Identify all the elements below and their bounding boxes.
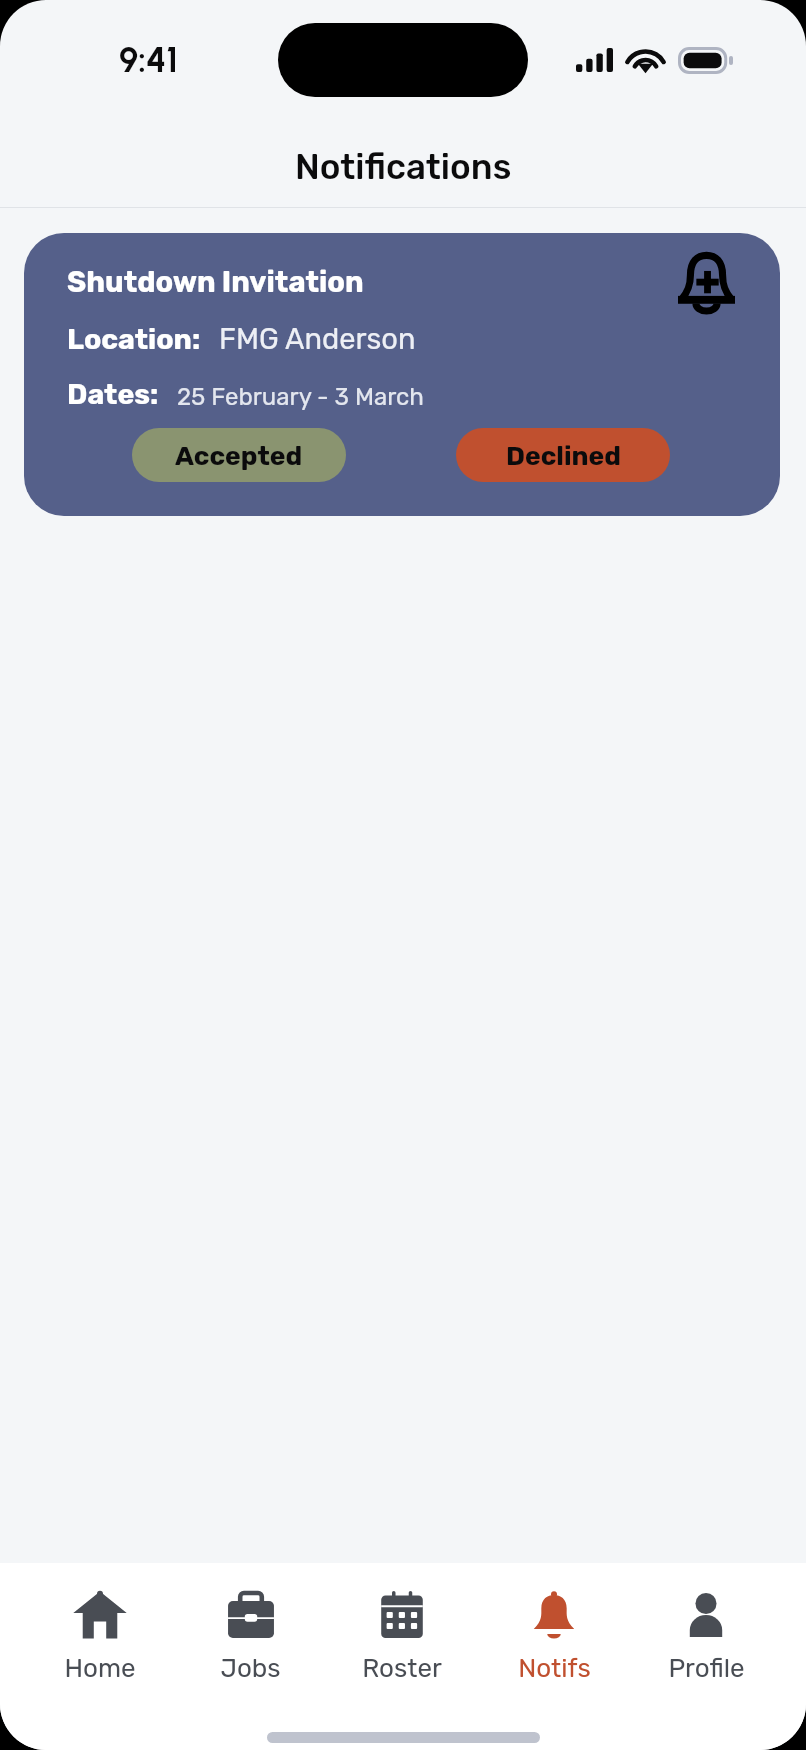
staticText: 9:41: [119, 39, 178, 81]
staticText: Accepted: [175, 440, 303, 471]
button[interactable]: Home: [24, 1563, 175, 1703]
staticText: Home: [64, 1653, 136, 1684]
staticText: Notifs: [518, 1653, 591, 1684]
staticText: 25 February - 3 March: [177, 383, 424, 411]
staticText: Roster: [362, 1653, 442, 1684]
staticText: FMG Anderson: [219, 322, 416, 356]
button[interactable]: Notifs: [478, 1563, 630, 1703]
button[interactable]: Profile: [630, 1563, 782, 1703]
button[interactable]: Add alert: [24, 233, 780, 516]
button[interactable]: Jobs: [175, 1563, 326, 1703]
staticText: Dates:: [67, 377, 159, 411]
staticText: Notifications: [295, 146, 512, 187]
staticText: Jobs: [220, 1653, 281, 1684]
button[interactable]: Roster: [326, 1563, 478, 1703]
staticText: Declined: [506, 440, 621, 471]
button[interactable]: Declined: [456, 428, 670, 482]
button[interactable]: Accepted: [132, 428, 346, 482]
button[interactable]: Add alert: [678, 250, 735, 313]
staticText: Shutdown Invitation: [67, 265, 364, 299]
staticText: Location:: [67, 322, 201, 356]
staticText: Profile: [668, 1653, 745, 1684]
